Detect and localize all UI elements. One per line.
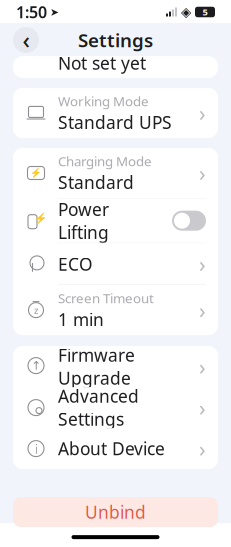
staticText: Advanced Settings [58, 385, 139, 431]
staticText: i [34, 440, 37, 457]
button[interactable]: Working Mode [13, 88, 218, 138]
staticText: Settings [78, 28, 153, 52]
staticText: Unbind [85, 501, 146, 524]
staticText: Screen Timeout [58, 289, 154, 307]
button[interactable]: ↑ [13, 346, 218, 387]
button[interactable]: Back [13, 27, 39, 53]
staticText: Not set yet [58, 51, 146, 74]
staticText: 1 min [58, 308, 104, 331]
staticText: › [199, 393, 206, 422]
staticText: ➤ [50, 6, 59, 18]
staticText: › [199, 296, 206, 324]
staticText: About Device [58, 437, 165, 460]
staticText: › [199, 352, 206, 381]
staticText: Firmware Upgrade [58, 344, 135, 390]
staticText: Working Mode [58, 92, 149, 110]
button[interactable]: ECO [13, 243, 218, 284]
button[interactable]: Advanced Settings [13, 387, 218, 428]
button[interactable]: ⚡ [13, 148, 218, 198]
staticText: › [199, 159, 206, 187]
staticText: › [199, 99, 206, 127]
staticText: ⚡ [30, 168, 42, 178]
staticText: Power Lifting [58, 198, 109, 244]
staticText: 5 [202, 6, 207, 18]
button[interactable]: Unbind [13, 497, 218, 527]
staticText: Standard [58, 171, 134, 194]
staticText: ◈ [181, 4, 191, 19]
staticText: › [199, 434, 206, 463]
staticText: ↑ [31, 359, 41, 372]
staticText: 1:50 [16, 1, 47, 23]
staticText: z [34, 304, 38, 316]
button[interactable]: i [13, 428, 218, 469]
staticText: ECO [58, 252, 93, 275]
button[interactable]: ⚡ [13, 199, 218, 243]
staticText: › [199, 250, 206, 278]
staticText: ‹ [22, 25, 29, 55]
staticText: Charging Mode [58, 152, 152, 170]
staticText: ⚡ [33, 212, 46, 224]
staticText: Standard UPS [58, 111, 172, 134]
button[interactable]: z [13, 285, 218, 335]
